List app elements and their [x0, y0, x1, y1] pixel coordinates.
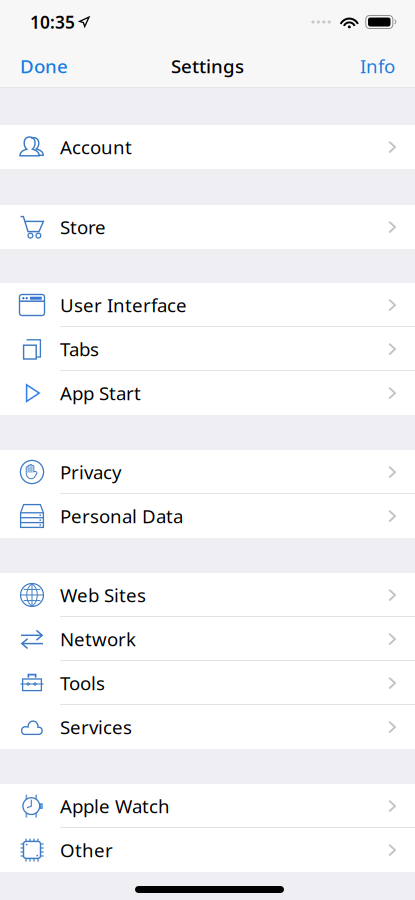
staticText: Services — [60, 715, 132, 739]
button[interactable]: Network — [0, 617, 415, 661]
staticText: Done — [20, 54, 68, 78]
button[interactable]: Tools — [0, 661, 415, 705]
button[interactable]: Tabs — [0, 327, 415, 371]
staticText: Info — [360, 54, 395, 78]
staticText: Network — [60, 627, 136, 651]
staticText: Apple Watch — [60, 794, 170, 818]
button[interactable]: Apple Watch — [0, 784, 415, 828]
button[interactable]: App Start — [0, 371, 415, 415]
staticText: Other — [60, 838, 113, 862]
staticText: Store — [60, 215, 106, 239]
staticText: Tabs — [60, 337, 99, 361]
staticText: App Start — [60, 381, 141, 405]
button[interactable]: Web Sites — [0, 573, 415, 617]
staticText: Privacy — [60, 460, 122, 484]
staticText: Account — [60, 135, 132, 159]
staticText: User Interface — [60, 293, 187, 317]
button[interactable]: Done — [20, 43, 78, 89]
button[interactable]: Info — [350, 43, 395, 89]
button[interactable]: Personal Data — [0, 494, 415, 538]
button[interactable]: Account — [0, 125, 415, 169]
button[interactable]: Store — [0, 205, 415, 249]
staticText: Personal Data — [60, 504, 183, 528]
staticText: Tools — [60, 671, 105, 695]
staticText: 10:35 — [30, 10, 75, 33]
button[interactable]: Services — [0, 705, 415, 749]
button[interactable]: Privacy — [0, 450, 415, 494]
staticText: Web Sites — [60, 583, 146, 607]
button[interactable]: Other — [0, 828, 415, 872]
staticText: Settings — [171, 54, 244, 78]
button[interactable]: User Interface — [0, 283, 415, 327]
